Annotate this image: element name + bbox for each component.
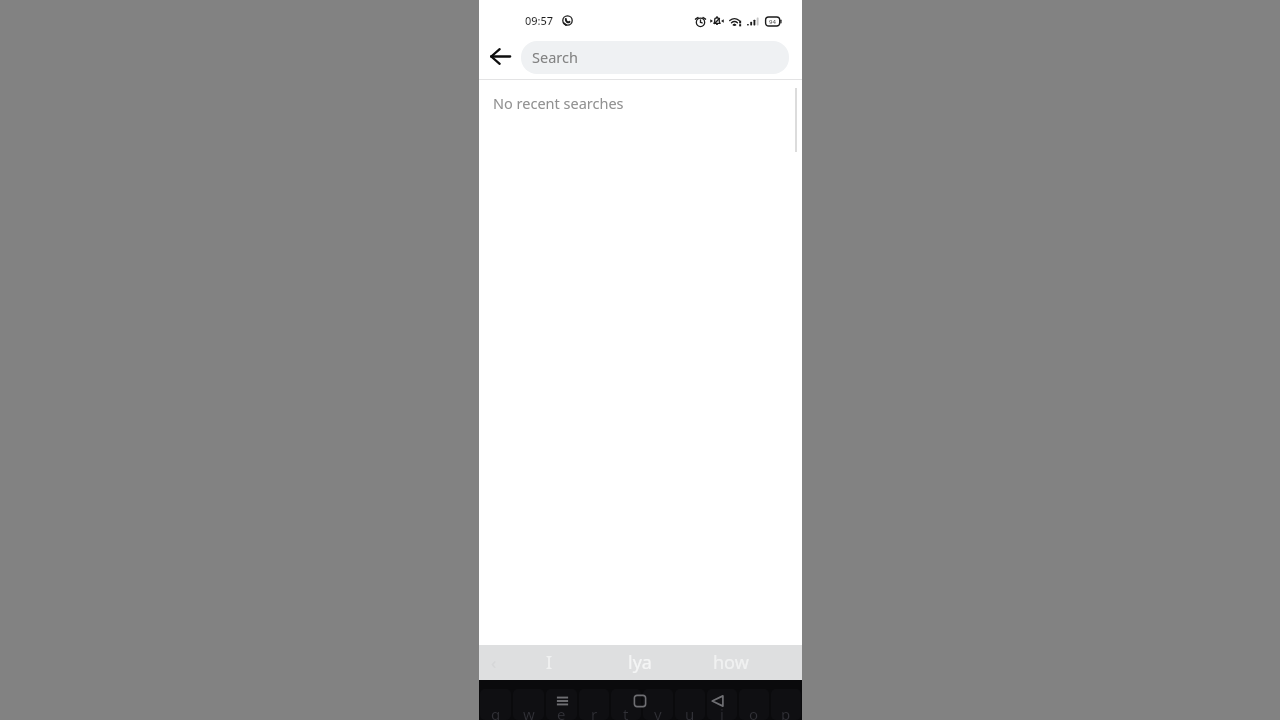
staticText: w: [523, 704, 535, 720]
staticText: u: [685, 704, 695, 720]
button[interactable]: e: [546, 689, 577, 720]
button[interactable]: Back: [710, 693, 726, 709]
button[interactable]: Back: [480, 40, 520, 73]
staticText: p: [781, 704, 791, 720]
button[interactable]: p: [771, 689, 801, 720]
button[interactable]: w: [513, 689, 544, 720]
button[interactable]: r: [579, 689, 609, 720]
button[interactable]: how: [700, 645, 762, 680]
button[interactable]: q: [480, 689, 511, 720]
staticText: Search: [532, 47, 578, 67]
staticText: 94: [769, 18, 776, 26]
button[interactable]: y: [643, 689, 673, 720]
staticText: q: [491, 704, 501, 720]
button[interactable]: t: [611, 689, 641, 720]
button[interactable]: Home: [632, 693, 648, 709]
staticText: o: [749, 704, 759, 720]
button[interactable]: Search: [521, 41, 789, 74]
button[interactable]: i: [707, 689, 737, 720]
staticText: lya: [628, 650, 652, 675]
button[interactable]: Recents: [553, 693, 569, 709]
staticText: I: [546, 650, 553, 675]
staticText: i: [720, 704, 724, 720]
staticText: e: [557, 704, 566, 720]
staticText: t: [623, 704, 629, 720]
staticText: y: [654, 704, 662, 720]
button[interactable]: lya: [609, 645, 671, 680]
staticText: how: [713, 650, 749, 675]
button[interactable]: u: [675, 689, 705, 720]
button[interactable]: o: [739, 689, 769, 720]
staticText: 09:57: [525, 13, 554, 28]
staticText: r: [591, 704, 598, 720]
staticText: No recent searches: [493, 93, 624, 113]
